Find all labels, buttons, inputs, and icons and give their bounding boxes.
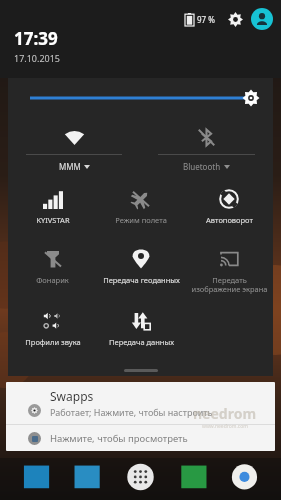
button[interactable]: Передать изображение экрана <box>185 240 273 302</box>
button[interactable]: Swapps <box>6 382 275 451</box>
staticText: Нажмите, чтобы просмотреть <box>50 432 188 445</box>
staticText: www.needrom.com <box>202 423 248 430</box>
button[interactable]: Режим полета <box>97 180 185 240</box>
staticText: 17.10.2015 <box>14 52 61 64</box>
button[interactable]: Передача геоданных <box>97 240 185 302</box>
button[interactable]: Bluetooth <box>140 118 273 180</box>
staticText: Автоповорот <box>206 215 253 225</box>
staticText: Bluetooth <box>183 161 221 172</box>
button[interactable]: Brightness <box>8 78 273 118</box>
button[interactable]: Нажмите, чтобы просмотреть <box>6 425 275 451</box>
staticText: 97 % <box>197 14 215 25</box>
staticText: 17:39 <box>14 27 58 50</box>
button[interactable]: KYIVSTAR <box>8 180 97 240</box>
staticText: KYIVSTAR <box>36 215 70 225</box>
staticText: needrom <box>193 404 257 423</box>
button[interactable]: МММ <box>8 118 140 180</box>
staticText: Передача геоданных <box>103 275 180 285</box>
button[interactable]: Профили звука <box>8 302 97 360</box>
staticText: Работает; Нажмите, чтобы настроить <box>50 406 213 418</box>
staticText: МММ <box>59 161 81 172</box>
staticText: Профили звука <box>25 337 81 347</box>
staticText: Режим полета <box>115 215 167 225</box>
button[interactable]: Фонарик <box>8 240 97 302</box>
button[interactable]: User profile <box>251 8 273 30</box>
staticText: Передать изображение экрана <box>191 275 268 294</box>
staticText: Передача данных <box>109 337 174 347</box>
staticText: Swapps <box>50 388 94 404</box>
staticText: Фонарик <box>36 275 69 285</box>
button[interactable]: Автоповорот <box>185 180 273 240</box>
button[interactable]: Settings <box>225 9 245 29</box>
button[interactable]: Передача данных <box>97 302 185 360</box>
